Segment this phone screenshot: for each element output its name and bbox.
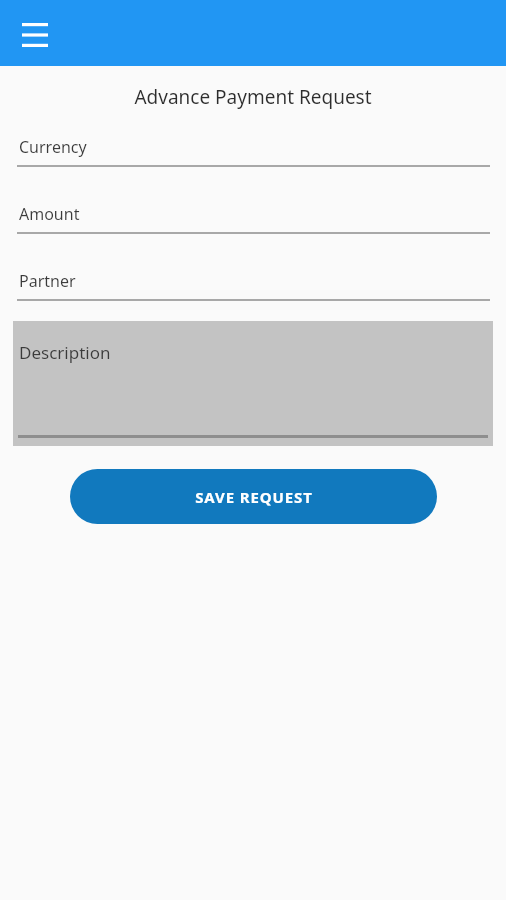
button[interactable]: Amount: [0, 203, 506, 234]
button[interactable]: Currency: [0, 136, 506, 167]
button[interactable]: Open navigation menu: [14, 14, 56, 56]
staticText: Partner: [19, 270, 76, 292]
staticText: Advance Payment Request: [134, 84, 372, 110]
staticText: Description: [19, 341, 111, 364]
staticText: Currency: [19, 136, 87, 158]
staticText: SAVE REQUEST: [195, 487, 313, 507]
button[interactable]: Description: [13, 321, 493, 446]
button[interactable]: Partner: [0, 270, 506, 301]
button[interactable]: SAVE REQUEST: [70, 469, 437, 524]
staticText: Amount: [19, 203, 80, 225]
